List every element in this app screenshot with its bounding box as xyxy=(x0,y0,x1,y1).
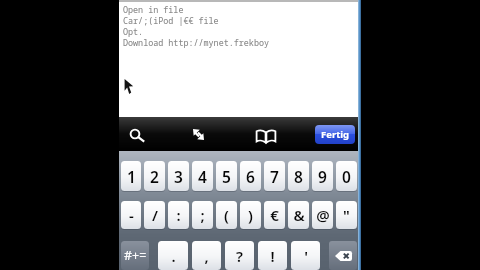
button[interactable]: ? xyxy=(225,241,254,270)
button[interactable]: / xyxy=(144,201,165,229)
button[interactable]: Fertig xyxy=(315,125,355,144)
staticText: 3 xyxy=(174,166,183,187)
staticText: " xyxy=(343,205,350,225)
button[interactable]: 7 xyxy=(264,161,285,191)
staticText: ) xyxy=(248,205,253,225)
staticText: Fertig xyxy=(321,128,350,141)
staticText: @ xyxy=(316,205,330,225)
button[interactable]: #+= xyxy=(121,241,149,270)
staticText: #+= xyxy=(124,247,147,264)
staticText: 2 xyxy=(150,166,159,187)
staticText: € xyxy=(270,205,279,225)
staticText: - xyxy=(129,205,134,225)
button[interactable]: ' xyxy=(291,241,320,270)
staticText: 6 xyxy=(246,166,255,187)
staticText: . xyxy=(171,246,176,266)
button[interactable]: ( xyxy=(216,201,237,229)
button[interactable]: , xyxy=(192,241,221,270)
button[interactable]: @ xyxy=(312,201,333,229)
button[interactable]: 9 xyxy=(312,161,333,191)
button[interactable]: Search xyxy=(119,117,155,151)
button[interactable]: . xyxy=(158,241,188,270)
staticText: 0 xyxy=(342,166,351,187)
staticText: Opt. xyxy=(123,26,144,37)
staticText: Open in file xyxy=(123,4,184,15)
button[interactable]: Backspace xyxy=(329,241,357,270)
staticText: 4 xyxy=(198,166,207,187)
button[interactable]: 6 xyxy=(240,161,261,191)
button[interactable]: - xyxy=(121,201,141,229)
button[interactable]: ! xyxy=(258,241,287,270)
staticText: ( xyxy=(224,205,229,225)
button[interactable]: & xyxy=(288,201,309,229)
staticText: Download http://mynet.frekboy xyxy=(123,37,269,48)
button[interactable]: Bookmarks xyxy=(249,119,283,153)
button[interactable]: : xyxy=(168,201,189,229)
button[interactable]: " xyxy=(336,201,357,229)
button[interactable]: 4 xyxy=(192,161,213,191)
staticText: / xyxy=(152,205,158,225)
button[interactable]: ; xyxy=(192,201,213,229)
staticText: ? xyxy=(236,246,243,266)
staticText: ! xyxy=(270,246,275,266)
staticText: 1 xyxy=(127,166,136,187)
button[interactable]: Fit to screen xyxy=(181,117,215,151)
button[interactable]: 3 xyxy=(168,161,189,191)
staticText: & xyxy=(293,205,305,225)
staticText: Car/;(iPod |€€ file xyxy=(123,15,219,26)
staticText: : xyxy=(176,205,181,225)
button[interactable]: € xyxy=(264,201,285,229)
staticText: ' xyxy=(304,246,308,266)
button[interactable]: 0 xyxy=(336,161,357,191)
staticText: 8 xyxy=(294,166,303,187)
button[interactable]: 2 xyxy=(144,161,165,191)
button[interactable]: ) xyxy=(240,201,261,229)
staticText: 7 xyxy=(270,166,279,187)
button[interactable]: 8 xyxy=(288,161,309,191)
staticText: 5 xyxy=(222,166,231,187)
staticText: ; xyxy=(200,205,205,225)
staticText: 9 xyxy=(318,166,327,187)
button[interactable]: 1 xyxy=(121,161,141,191)
button[interactable]: 5 xyxy=(216,161,237,191)
staticText: , xyxy=(204,246,209,266)
